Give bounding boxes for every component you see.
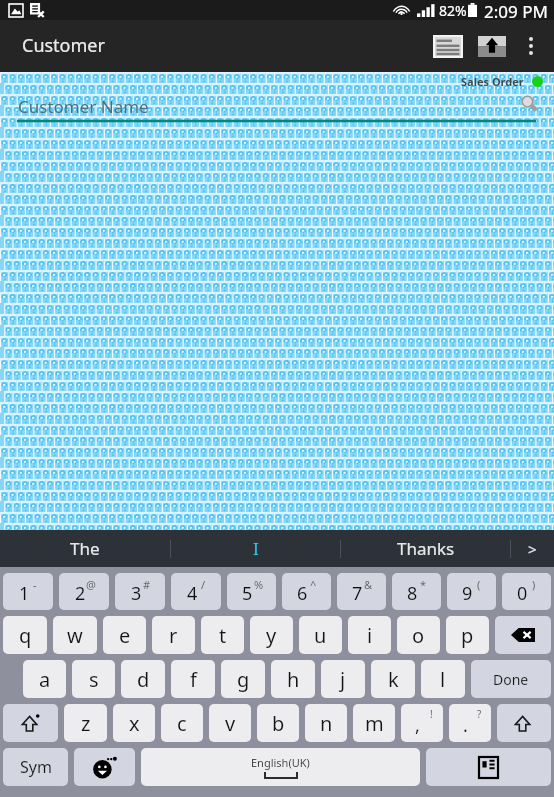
button[interactable]: Done	[471, 660, 551, 698]
button[interactable]: Emoji	[74, 748, 135, 786]
button[interactable]: 8	[392, 573, 441, 610]
button[interactable]: t	[201, 616, 244, 654]
button[interactable]: Sym	[3, 748, 68, 786]
staticText: 2	[75, 581, 86, 606]
button[interactable]: 6	[282, 573, 331, 610]
staticText: The	[70, 537, 100, 560]
button[interactable]: j	[321, 660, 365, 698]
button[interactable]: 7	[337, 573, 386, 610]
button[interactable]: ,	[401, 704, 443, 742]
staticText: 0	[517, 581, 528, 606]
button[interactable]: x	[113, 704, 155, 742]
button[interactable]: z	[64, 704, 107, 742]
button[interactable]: 2	[59, 573, 109, 610]
button[interactable]: a	[23, 660, 66, 698]
button[interactable]: e	[103, 616, 146, 654]
button[interactable]: 4	[171, 573, 221, 610]
staticText: (	[477, 577, 481, 592]
staticText: c	[177, 710, 187, 737]
staticText: x	[129, 710, 140, 737]
staticText: 1	[19, 581, 30, 606]
button[interactable]: Shift	[3, 704, 58, 742]
staticText: ?	[477, 707, 482, 721]
staticText: p	[461, 622, 474, 649]
staticText: 82%	[439, 1, 467, 20]
staticText: z	[81, 710, 91, 737]
staticText: ^	[310, 577, 317, 592]
button[interactable]: I	[171, 530, 340, 567]
button[interactable]: Notes	[426, 24, 470, 68]
button[interactable]: h	[271, 660, 315, 698]
staticText: #	[143, 577, 151, 592]
staticText: Customer Name	[18, 95, 149, 118]
staticText: f	[190, 666, 197, 693]
button[interactable]: m	[353, 704, 395, 742]
staticText: )	[532, 577, 536, 592]
button[interactable]: w	[53, 616, 97, 654]
staticText: s	[89, 666, 99, 693]
staticText: !	[430, 707, 433, 721]
button[interactable]: 3	[115, 573, 165, 610]
button[interactable]: Shift	[497, 704, 551, 742]
button[interactable]: Backspace	[495, 616, 551, 654]
staticText: 9	[462, 581, 473, 606]
staticText: d	[137, 666, 150, 693]
staticText: Customer	[22, 33, 105, 58]
staticText: 5	[242, 581, 253, 606]
button[interactable]: 1	[3, 573, 53, 610]
button[interactable]: p	[446, 616, 489, 654]
button[interactable]: d	[121, 660, 165, 698]
button[interactable]: b	[257, 704, 299, 742]
staticText: u	[314, 622, 327, 649]
staticText: j	[340, 666, 346, 693]
staticText: -	[33, 577, 37, 592]
button[interactable]: Space	[141, 748, 420, 786]
staticText: 7	[352, 581, 363, 606]
staticText: /	[201, 577, 206, 592]
button[interactable]: c	[161, 704, 203, 742]
staticText: l	[440, 666, 446, 693]
staticText: Sym	[20, 756, 52, 778]
button[interactable]: u	[299, 616, 342, 654]
staticText: e	[119, 622, 131, 649]
button[interactable]: n	[305, 704, 347, 742]
staticText: i	[367, 622, 373, 649]
button[interactable]: More suggestions	[511, 530, 554, 567]
staticText: t	[219, 622, 227, 649]
button[interactable]: s	[72, 660, 115, 698]
button[interactable]: 0	[502, 573, 551, 610]
button[interactable]: 9	[447, 573, 496, 610]
staticText: b	[272, 710, 285, 737]
button[interactable]: i	[348, 616, 391, 654]
staticText: Thanks	[397, 537, 455, 560]
button[interactable]: More options	[514, 29, 548, 63]
staticText: *	[420, 577, 427, 592]
staticText: k	[388, 666, 399, 693]
staticText: 6	[297, 581, 308, 606]
button[interactable]: Handwriting	[426, 748, 551, 786]
button[interactable]: .	[449, 704, 491, 742]
button[interactable]: r	[152, 616, 195, 654]
staticText: g	[237, 666, 250, 693]
button[interactable]: y	[250, 616, 293, 654]
button[interactable]: l	[421, 660, 465, 698]
button[interactable]: Upload	[470, 24, 514, 68]
button[interactable]: k	[371, 660, 415, 698]
staticText: Sales Order	[461, 74, 524, 89]
staticText: y	[266, 622, 277, 649]
staticText: w	[67, 622, 83, 649]
button[interactable]: o	[397, 616, 440, 654]
staticText: %	[254, 577, 264, 592]
staticText: 4	[187, 581, 198, 606]
staticText: I	[253, 537, 259, 560]
staticText: English(UK)	[251, 755, 310, 770]
button[interactable]: q	[3, 616, 47, 654]
button[interactable]: g	[221, 660, 265, 698]
button[interactable]: f	[171, 660, 215, 698]
button[interactable]: 5	[227, 573, 276, 610]
staticText: q	[19, 622, 32, 649]
staticText: o	[412, 622, 425, 649]
button[interactable]: The	[0, 530, 170, 567]
button[interactable]: v	[209, 704, 251, 742]
button[interactable]: Thanks	[341, 530, 510, 567]
